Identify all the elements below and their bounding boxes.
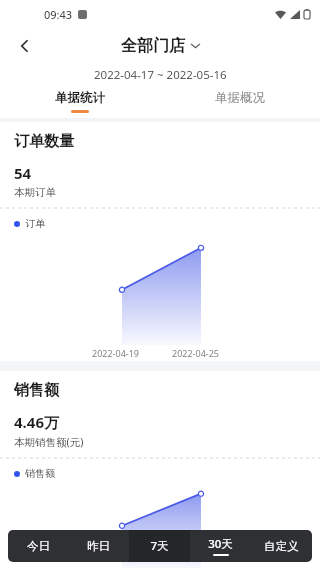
staticText: 单据概况 (215, 90, 265, 106)
staticText: 单据统计 (55, 90, 105, 106)
staticText: 销售额 (14, 381, 59, 400)
staticText: 2022-04-19 (92, 347, 139, 359)
staticText: 订单数量 (14, 132, 74, 151)
button[interactable]: Back (8, 29, 42, 63)
button[interactable]: 今日 (8, 530, 68, 562)
button[interactable]: 全部门店 (121, 36, 200, 56)
button[interactable]: 昨日 (68, 530, 129, 562)
staticText: 今日 (27, 539, 50, 553)
button[interactable]: 单据统计 (0, 86, 160, 118)
staticText: 2022-04-17 ~ 2022-05-16 (94, 67, 227, 83)
staticText: 4.46万 (14, 412, 59, 432)
staticText: 昨日 (87, 539, 110, 553)
staticText: 自定义 (264, 539, 299, 553)
button[interactable]: 7天 (129, 530, 190, 562)
staticText: 本期销售额(元) (14, 435, 84, 449)
button[interactable]: 30天 (190, 530, 251, 562)
staticText: 7天 (150, 538, 169, 554)
staticText: 2022-04-25 (172, 347, 219, 359)
staticText: 全部门店 (121, 36, 185, 56)
staticText: 54 (14, 163, 32, 183)
button[interactable]: 单据概况 (160, 86, 320, 118)
staticText: 订单 (25, 217, 45, 230)
staticText: 销售额 (25, 467, 55, 480)
staticText: 本期订单 (14, 186, 56, 199)
staticText: 30天 (208, 536, 233, 552)
button[interactable]: 自定义 (251, 530, 312, 562)
staticText: 09:43 (44, 7, 73, 22)
